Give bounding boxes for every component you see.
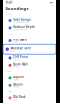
staticText: ARCHIVE bbox=[6, 91, 12, 92]
button[interactable]: Lagoon bbox=[3, 74, 56, 82]
staticText: STATIONS bbox=[6, 33, 13, 35]
staticText: RECENT bbox=[6, 13, 12, 15]
staticText: Storm Wall bbox=[13, 63, 28, 66]
button[interactable]: Estuary bbox=[3, 82, 56, 89]
staticText: Alert 4.8 m bbox=[13, 66, 19, 68]
staticText: Estuary bbox=[13, 83, 22, 86]
staticText: Updated 2 minutes ago bbox=[13, 21, 28, 23]
staticText: Lagoon bbox=[13, 75, 24, 79]
button[interactable]: Tidal Range bbox=[3, 17, 56, 24]
staticText: Calm 0.6 m bbox=[13, 79, 19, 81]
staticText: Old Dock bbox=[13, 95, 25, 99]
staticText: Moorage Lane bbox=[10, 46, 31, 50]
staticText: 9:41 bbox=[6, 1, 13, 4]
button[interactable]: Moorage Lane bbox=[3, 44, 56, 54]
staticText: BUOYS bbox=[6, 71, 11, 72]
staticText: Updated 9 minutes ago bbox=[13, 29, 28, 31]
staticText: Inactive bbox=[13, 99, 18, 101]
staticText: Pier Seven bbox=[13, 38, 27, 41]
staticText: Cliff Point bbox=[13, 55, 28, 59]
button[interactable]: Pier Seven bbox=[3, 37, 56, 44]
staticText: Calm 0.9 m bbox=[13, 86, 19, 88]
staticText: Rising 3.1 m bbox=[10, 50, 17, 52]
staticText: Falling 1.2 m bbox=[13, 59, 20, 61]
staticText: ▮▮ ▮ bbox=[50, 2, 53, 3]
staticText: Harbour Depth bbox=[13, 25, 35, 29]
button[interactable]: Harbour Depth bbox=[3, 24, 56, 32]
staticText: Steady 2.4 m bbox=[13, 41, 21, 43]
staticText: Soundings bbox=[5, 6, 28, 11]
button[interactable]: Cliff Point bbox=[3, 54, 56, 62]
button[interactable]: Storm Wall bbox=[3, 62, 56, 69]
staticText: Tidal Range bbox=[13, 18, 31, 21]
button[interactable]: Old Dock bbox=[3, 94, 56, 102]
